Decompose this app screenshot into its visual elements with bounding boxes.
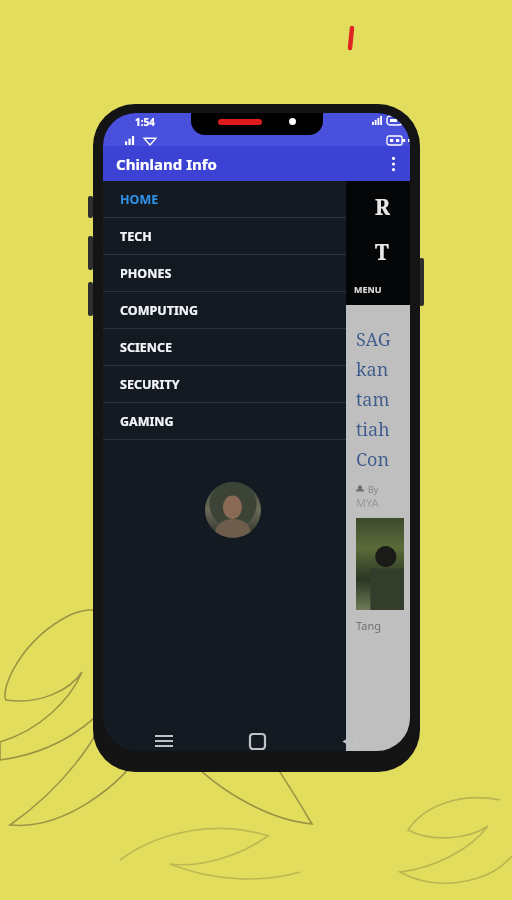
button[interactable]: Back bbox=[327, 724, 371, 758]
staticText: TECH bbox=[120, 228, 152, 245]
staticText: Chinland Info bbox=[116, 154, 217, 174]
staticText: 1:54 bbox=[135, 115, 155, 129]
staticText: By bbox=[368, 483, 379, 495]
button[interactable]: TECH bbox=[103, 218, 346, 255]
button[interactable]: Chinland Info bbox=[103, 146, 410, 181]
button[interactable]: GAMING bbox=[103, 403, 346, 440]
staticText: SAG bbox=[356, 327, 391, 352]
button[interactable]: HOME bbox=[103, 181, 346, 218]
staticText: MENU bbox=[354, 283, 382, 295]
button[interactable]: Profile photo bbox=[205, 482, 261, 538]
staticText: MYA bbox=[356, 495, 379, 510]
staticText: Con bbox=[356, 447, 390, 472]
staticText: PHONES bbox=[120, 265, 172, 282]
staticText: HOME bbox=[120, 191, 159, 208]
button[interactable]: SAG bbox=[346, 305, 410, 751]
button[interactable]: SECURITY bbox=[103, 366, 346, 403]
button[interactable]: PHONES bbox=[103, 255, 346, 292]
staticText: tam bbox=[356, 387, 390, 412]
button[interactable]: COMPUTING bbox=[103, 292, 346, 329]
button[interactable]: Home bbox=[235, 724, 279, 758]
staticText: SECURITY bbox=[120, 376, 180, 393]
staticText: GAMING bbox=[120, 413, 174, 430]
staticText: SCIENCE bbox=[120, 339, 172, 356]
staticText: tiah bbox=[356, 417, 390, 442]
staticText: kan bbox=[356, 357, 389, 382]
staticText: Tang bbox=[356, 618, 381, 633]
button[interactable]: SCIENCE bbox=[103, 329, 346, 366]
staticText: COMPUTING bbox=[120, 302, 198, 319]
button[interactable]: More options bbox=[376, 147, 410, 181]
staticText: T bbox=[375, 238, 389, 267]
button[interactable]: Recent apps bbox=[142, 724, 186, 758]
staticText: R bbox=[375, 193, 390, 222]
